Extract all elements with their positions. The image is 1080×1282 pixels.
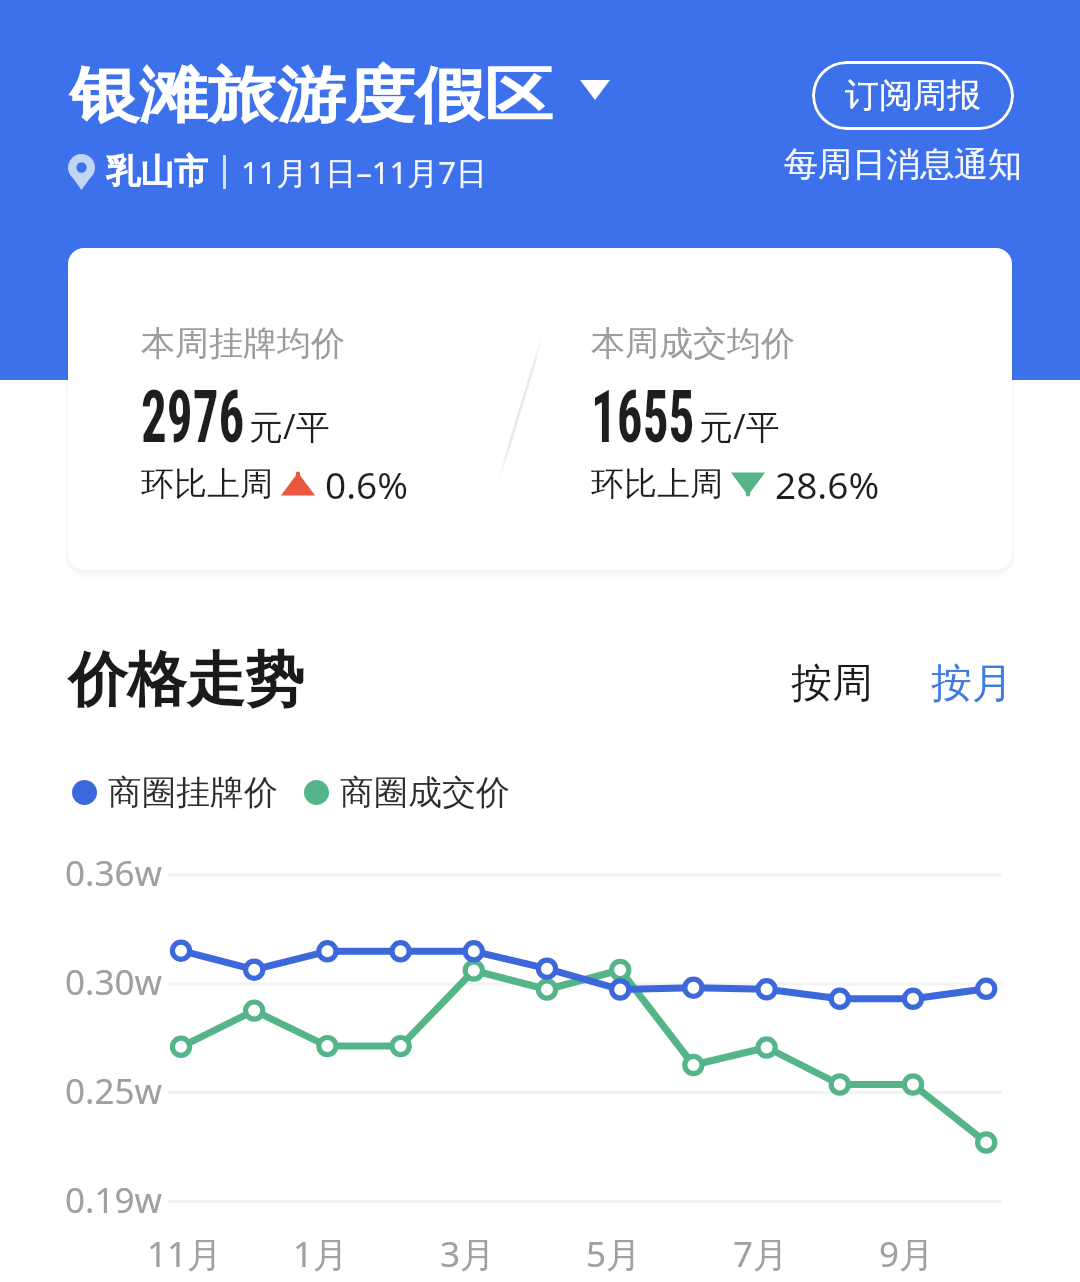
staticText: 11月 — [147, 1230, 223, 1278]
button[interactable]: 按月 — [915, 648, 1029, 720]
staticText: 按周 — [791, 658, 873, 710]
staticText: 0.30w — [65, 958, 162, 1006]
staticText: 0.6% — [325, 459, 408, 509]
staticText: 9月 — [879, 1230, 935, 1278]
staticText: 本周挂牌均价 — [141, 322, 345, 365]
staticText: 每周日消息通知 — [784, 143, 1022, 186]
staticText: 11月1日–11月7日 — [241, 151, 487, 193]
staticText: 乳山市 — [106, 150, 208, 193]
button[interactable]: 切换小区 — [569, 71, 621, 123]
staticText: 2976 — [141, 375, 245, 459]
staticText: 商圈挂牌价 — [108, 771, 278, 814]
staticText: 商圈成交价 — [340, 771, 510, 814]
staticText: 按月 — [931, 658, 1013, 710]
button[interactable]: 订阅周报 — [812, 61, 1014, 130]
staticText: 0.25w — [65, 1067, 162, 1115]
staticText: 订阅周报 — [845, 74, 981, 117]
staticText: 价格走势 — [68, 643, 304, 717]
staticText: 环比上周 — [591, 463, 723, 505]
staticText: 0.36w — [65, 849, 162, 897]
staticText: 1655 — [591, 375, 695, 459]
staticText: 7月 — [733, 1230, 789, 1278]
staticText: 3月 — [440, 1230, 496, 1278]
staticText: 环比上周 — [141, 463, 273, 505]
staticText: 0.19w — [65, 1176, 162, 1224]
staticText: 28.6% — [775, 459, 880, 509]
staticText: 1月 — [293, 1230, 349, 1278]
staticText: 元/平 — [249, 403, 330, 449]
staticText: 银滩旅游度假区 — [70, 58, 553, 134]
staticText: 5月 — [586, 1230, 642, 1278]
staticText: 元/平 — [699, 403, 780, 449]
button[interactable]: 按周 — [775, 648, 889, 720]
staticText: 本周成交均价 — [591, 322, 795, 365]
